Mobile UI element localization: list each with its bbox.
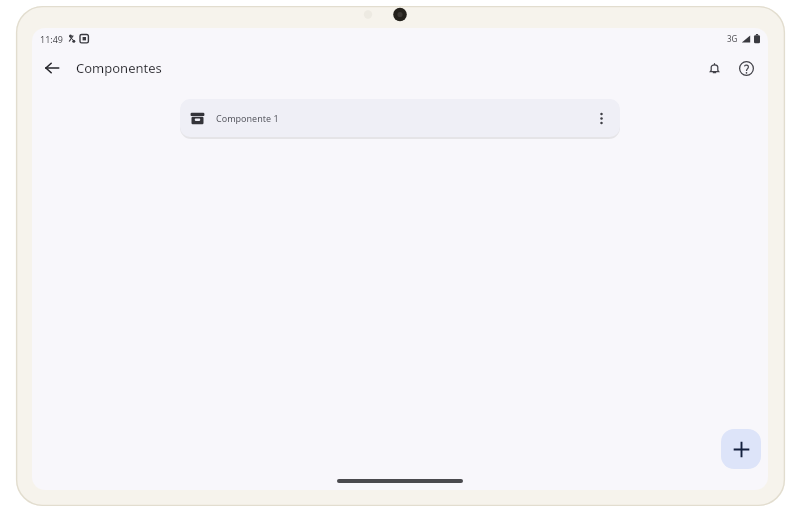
button[interactable]: Back xyxy=(38,54,66,82)
staticText: 3G xyxy=(727,33,738,44)
staticText: 11:49 xyxy=(40,33,64,45)
button[interactable]: Help xyxy=(732,54,760,82)
button[interactable]: Componente 1 xyxy=(180,99,620,137)
button[interactable]: Add component xyxy=(721,429,761,469)
staticText: Componentes xyxy=(76,59,162,77)
staticText: Componente 1 xyxy=(216,112,279,124)
button[interactable]: Notifications xyxy=(700,54,728,82)
button[interactable]: More options xyxy=(588,105,614,131)
